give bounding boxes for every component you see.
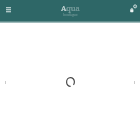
staticText: boutique xyxy=(63,13,78,17)
button[interactable]: Aqua xyxy=(61,3,80,17)
button[interactable]: Open navigation menu xyxy=(1,2,16,17)
other: Loading xyxy=(66,77,75,87)
staticText: Aqua xyxy=(61,3,80,13)
button[interactable]: Shopping bag xyxy=(122,3,139,20)
